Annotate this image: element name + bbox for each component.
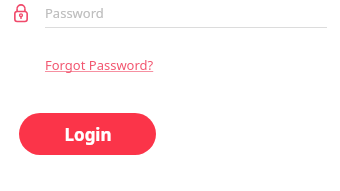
button[interactable]: Forgot Password? <box>45 54 154 76</box>
other: Password <box>14 4 28 22</box>
staticText: Password <box>45 4 104 22</box>
staticText: Forgot Password? <box>45 56 154 74</box>
button[interactable]: Login <box>19 113 156 155</box>
staticText: Login <box>64 123 112 146</box>
button[interactable]: Password <box>14 0 327 28</box>
